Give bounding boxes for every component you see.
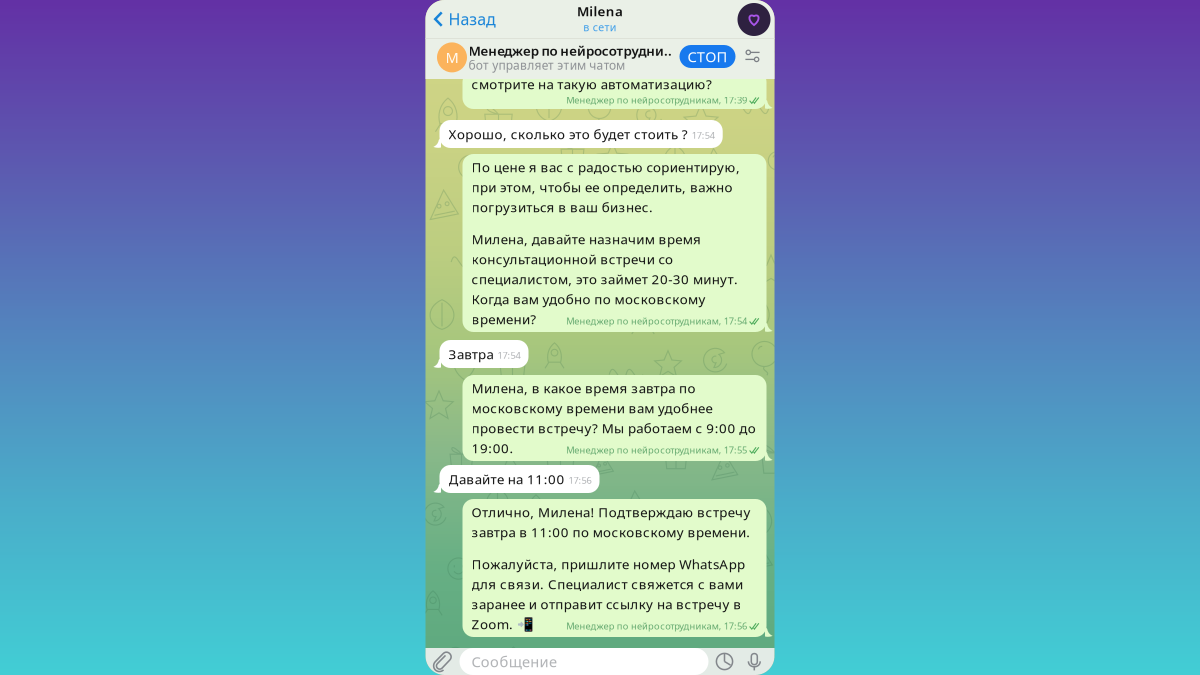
staticText: Назад: [448, 8, 496, 30]
staticText: смотрите на такую автоматизацию?: [471, 75, 712, 93]
staticText: в сети: [583, 20, 617, 34]
staticText: консультационной встречи со: [471, 250, 673, 268]
button[interactable]: Сообщение: [459, 648, 708, 675]
staticText: Менеджер по нейросотрудникам, 17:56: [566, 620, 747, 632]
staticText: Хорошо, сколько это будет стоить ?: [448, 125, 688, 143]
staticText: погрузиться в ваш бизнес.: [471, 198, 653, 216]
button[interactable]: Schedule message: [708, 648, 740, 675]
staticText: Милена, в какое время завтра по: [471, 379, 695, 397]
staticText: 19:00.: [471, 439, 513, 457]
staticText: Milena: [577, 2, 623, 20]
button[interactable]: Bot settings: [738, 42, 766, 70]
staticText: для связи. Специалист свяжется с вами: [471, 575, 743, 593]
staticText: специалистом, это займет 20-30 минут.: [471, 270, 738, 288]
staticText: Zoom. 📲: [471, 615, 534, 633]
button[interactable]: Attach file: [425, 648, 459, 675]
staticText: Менеджер по нейросотрудникам, 17:55: [566, 444, 747, 456]
staticText: бот управляет этим чатом: [468, 57, 625, 73]
staticText: заранее и отправит ссылку на встречу в: [471, 595, 741, 613]
staticText: Давайте на 11:00: [448, 470, 564, 488]
staticText: СТОП: [688, 47, 727, 66]
staticText: Менеджер по нейросотрудникам, 17:54: [566, 315, 747, 327]
staticText: 17:54: [692, 129, 715, 141]
button[interactable]: Назад: [425, 0, 504, 38]
staticText: при этом, чтобы ее определить, важно: [471, 178, 732, 196]
staticText: Менеджер по нейросотрудни..: [468, 42, 672, 59]
staticText: Милена, давайте назначим время: [471, 230, 701, 248]
staticText: времени?: [471, 310, 536, 328]
staticText: M: [445, 48, 458, 67]
staticText: Пожалуйста, пришлите номер WhatsApp: [471, 555, 745, 573]
button[interactable]: СТОП: [679, 45, 735, 68]
staticText: Когда вам удобно по московскому: [471, 290, 705, 308]
staticText: завтра в 11:00 по московскому времени.: [471, 523, 750, 541]
staticText: Отлично, Милена! Подтверждаю встречу: [471, 503, 750, 521]
staticText: По цене я вас с радостью сориентирую,: [471, 158, 740, 176]
staticText: 17:54: [497, 349, 520, 361]
staticText: московскому времени вам удобнее: [471, 399, 712, 417]
button[interactable]: Record voice message: [740, 648, 768, 675]
staticText: Завтра: [448, 345, 493, 363]
staticText: Менеджер по нейросотрудникам, 17:39: [566, 94, 747, 106]
staticText: провести встречу? Мы работаем с 9:00 до: [471, 419, 756, 437]
staticText: 17:56: [568, 474, 591, 486]
staticText: Сообщение: [471, 652, 557, 671]
button[interactable]: Profile photo: [737, 3, 770, 36]
